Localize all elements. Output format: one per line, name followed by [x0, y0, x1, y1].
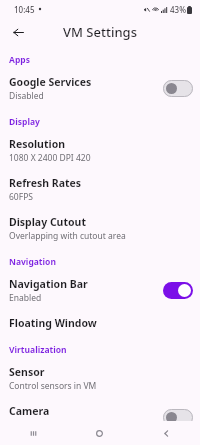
staticText: Enabled	[9, 292, 42, 304]
button[interactable]: Google Services	[0, 72, 200, 105]
staticText: Control sensors in VM	[9, 380, 97, 392]
staticText: Display	[9, 116, 40, 128]
staticText: Navigation	[9, 256, 56, 268]
button[interactable]: Resolution	[0, 134, 200, 167]
staticText: 10:45	[14, 4, 35, 15]
button[interactable]: Switch off	[163, 409, 193, 426]
button[interactable]: Switch on	[163, 282, 193, 299]
button[interactable]: Display Cutout	[0, 212, 200, 245]
staticText: Refresh Rates	[9, 176, 82, 190]
staticText: 60FPS	[9, 191, 33, 203]
staticText: Navigation Bar	[9, 277, 88, 291]
staticText: VM Settings	[63, 23, 137, 41]
button[interactable]: Floating Window	[0, 313, 200, 333]
staticText: Google Services	[9, 75, 92, 89]
staticText: Camera	[9, 404, 50, 418]
button[interactable]: Sensor	[0, 362, 200, 395]
button[interactable]: Back	[133, 421, 200, 445]
staticText: Virtualization	[9, 344, 67, 356]
button[interactable]: Switch off	[163, 80, 193, 97]
button[interactable]: Camera	[0, 401, 200, 434]
staticText: Apps	[9, 54, 30, 66]
staticText: Overlapping with cutout area	[9, 230, 126, 242]
staticText: Resolution	[9, 137, 66, 151]
button[interactable]: Recent apps	[0, 421, 66, 445]
staticText: 43%	[170, 4, 186, 15]
button[interactable]: Back	[7, 21, 29, 43]
staticText: Floating Window	[9, 316, 97, 330]
staticText: Display Cutout	[9, 215, 86, 229]
button[interactable]: Refresh Rates	[0, 173, 200, 206]
button[interactable]: Home	[66, 421, 133, 445]
staticText: Disabled	[9, 90, 44, 102]
staticText: 1080 X 2400 DPI 420	[9, 152, 91, 164]
staticText: Sensor	[9, 365, 45, 379]
button[interactable]: Navigation Bar	[0, 274, 200, 307]
